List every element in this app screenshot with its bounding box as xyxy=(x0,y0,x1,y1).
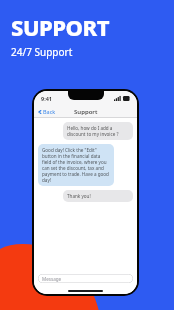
staticText: Support xyxy=(74,108,98,116)
staticText: 9:41 xyxy=(41,95,52,102)
button[interactable]: Good day! Click the "Edit" button in the… xyxy=(38,144,114,186)
staticText: Good day! Click the "Edit" button in the… xyxy=(42,147,110,183)
staticText: 24/7 Support xyxy=(11,45,73,59)
staticText: Message xyxy=(42,276,62,282)
staticText: Hello, how do I add a discount to my inv… xyxy=(67,125,129,137)
button[interactable]: Hello, how do I add a discount to my inv… xyxy=(63,122,133,140)
button[interactable]: Thank you! xyxy=(63,190,133,202)
button[interactable]: Back xyxy=(34,106,60,117)
button[interactable]: Message xyxy=(38,274,133,283)
staticText: SUPPORT xyxy=(11,12,110,42)
staticText: Back xyxy=(43,108,56,115)
staticText: Thank you! xyxy=(67,193,91,199)
